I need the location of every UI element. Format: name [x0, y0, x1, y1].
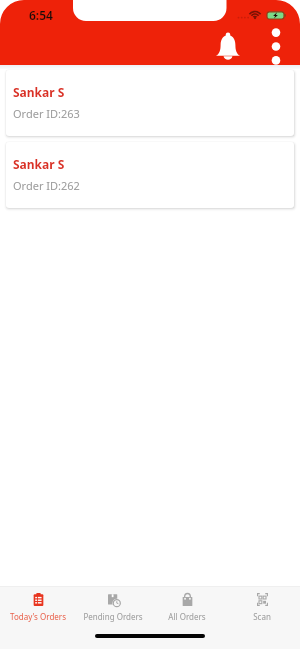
button[interactable]: Sankar S: [6, 70, 294, 136]
staticText: Scan: [253, 611, 271, 622]
button[interactable]: More options: [267, 28, 285, 65]
staticText: 6:54: [29, 7, 53, 23]
button[interactable]: Today's Orders: [1, 593, 75, 622]
button[interactable]: Pending Orders: [76, 593, 150, 622]
staticText: All Orders: [168, 611, 206, 622]
button[interactable]: Scan: [225, 593, 299, 622]
staticText: Today's Orders: [10, 611, 66, 622]
button[interactable]: Notifications: [215, 32, 241, 62]
staticText: Order ID:263: [13, 106, 80, 121]
staticText: Pending Orders: [83, 611, 143, 622]
staticText: Sankar S: [13, 84, 65, 100]
button[interactable]: Sankar S: [6, 142, 294, 208]
staticText: Order ID:262: [13, 178, 80, 193]
staticText: Sankar S: [13, 156, 65, 172]
button[interactable]: All Orders: [150, 593, 224, 622]
